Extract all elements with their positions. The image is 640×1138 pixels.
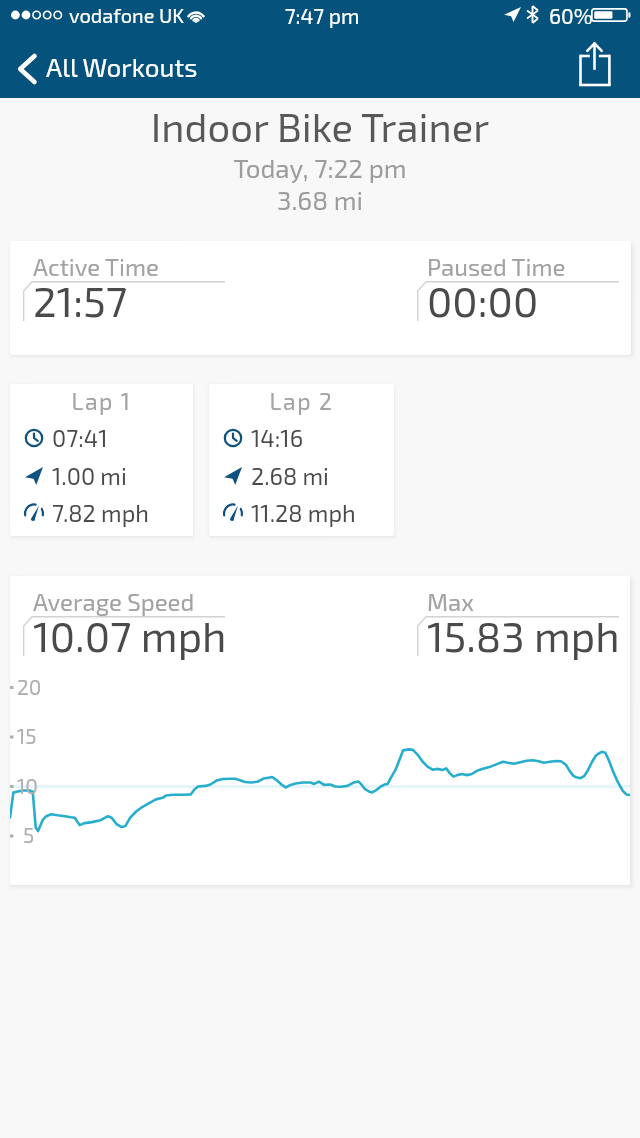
staticText: 15.83 mph	[427, 610, 620, 660]
staticText: 11.28 mph	[251, 499, 356, 527]
button[interactable]: Lap 2	[209, 384, 394, 536]
button[interactable]: Average Speed	[10, 576, 630, 885]
staticText: 15	[17, 723, 37, 748]
staticText: Average Speed	[33, 587, 195, 616]
button[interactable]: Share	[572, 39, 618, 85]
staticText: 07:41	[52, 424, 108, 452]
staticText: 00:00	[427, 275, 539, 325]
staticText: 10.07 mph	[33, 610, 227, 660]
staticText: Lap 1	[10, 387, 193, 415]
staticText: Max	[427, 587, 474, 616]
staticText: 7:47 pm	[2, 3, 640, 28]
staticText: 14:16	[251, 424, 304, 452]
staticText: Active Time	[33, 252, 159, 281]
staticText: 3.68 mi	[0, 184, 640, 215]
button[interactable]: All Workouts	[0, 40, 210, 98]
staticText: vodafone UK	[69, 3, 185, 27]
staticText: 1.00 mi	[52, 462, 127, 490]
button[interactable]: Active Time	[10, 241, 631, 355]
staticText: 20	[17, 674, 42, 699]
staticText: 21:57	[33, 275, 128, 325]
staticText: Indoor Bike Trainer	[0, 102, 640, 150]
staticText: 60%	[549, 3, 593, 28]
button[interactable]: Lap 1	[10, 384, 193, 536]
staticText: 7.82 mph	[52, 499, 149, 527]
staticText: 5	[23, 822, 35, 847]
staticText: 10	[17, 773, 39, 798]
staticText: Lap 2	[209, 387, 394, 415]
staticText: 2.68 mi	[251, 462, 329, 490]
staticText: Today, 7:22 pm	[0, 152, 640, 183]
staticText: Paused Time	[427, 252, 566, 281]
staticText: All Workouts	[46, 51, 198, 82]
